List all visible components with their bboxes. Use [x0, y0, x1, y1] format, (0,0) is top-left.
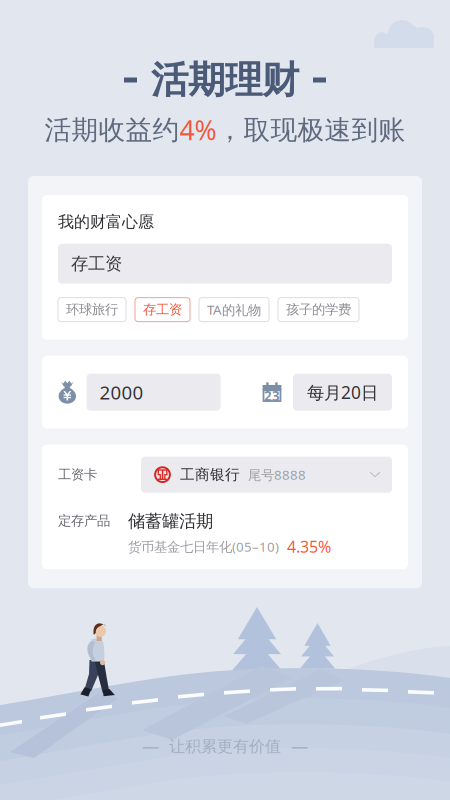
button[interactable]: 工商银行	[141, 457, 392, 493]
button[interactable]: 孩子的学费	[278, 298, 359, 322]
staticText: 环球旅行	[66, 301, 118, 318]
staticText: 4.35%	[287, 536, 331, 557]
staticText: 存工资	[143, 301, 182, 318]
staticText: 每月20日	[307, 381, 378, 404]
staticText: 活期理财	[151, 57, 299, 103]
staticText: ，取现极速到账	[216, 114, 405, 146]
staticText: 储蓄罐活期	[128, 511, 213, 532]
staticText: 我的财富心愿	[58, 212, 154, 232]
staticText: 活期收益约	[44, 114, 179, 146]
staticText: —	[142, 735, 159, 758]
button[interactable]: 存工资	[135, 298, 190, 322]
staticText: 尾号8888	[248, 466, 306, 483]
staticText: 2000	[100, 380, 144, 405]
staticText: 工资卡	[58, 466, 97, 483]
staticText: 4%	[179, 112, 216, 148]
staticText: 23	[264, 387, 280, 405]
staticText: 货币基金七日年化(05–10)	[128, 538, 279, 555]
staticText: —	[291, 735, 308, 758]
staticText: 定存产品	[58, 513, 110, 529]
staticText: 让积累更有价值	[169, 737, 281, 756]
staticText: 工商银行	[180, 466, 240, 484]
button[interactable]: TA的礼物	[199, 298, 269, 322]
staticText: 存工资	[71, 253, 122, 274]
staticText: 孩子的学费	[286, 301, 351, 318]
button[interactable]: 环球旅行	[58, 298, 126, 322]
staticText: TA的礼物	[207, 301, 261, 319]
